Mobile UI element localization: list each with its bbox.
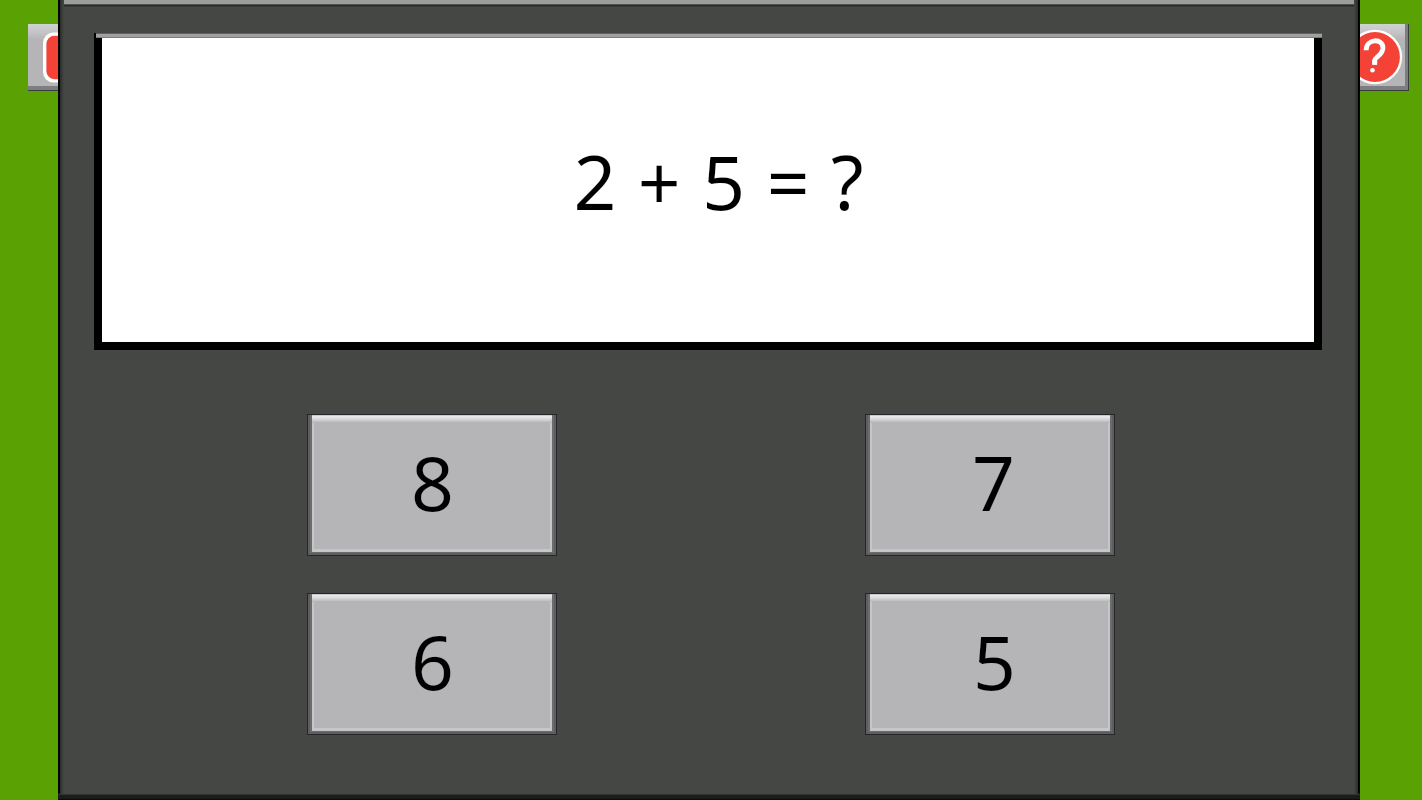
button[interactable]: 5	[865, 593, 1115, 735]
button[interactable]: Quit game	[28, 24, 96, 91]
staticText: 2 + 5 = ?	[573, 130, 865, 232]
staticText: 6	[411, 610, 454, 712]
staticText: 7	[972, 431, 1015, 533]
staticText: 8	[411, 431, 454, 533]
button[interactable]: 6	[307, 593, 557, 735]
staticText: 5	[973, 610, 1016, 712]
button[interactable]: Help	[1341, 24, 1409, 91]
button[interactable]: 8	[307, 414, 557, 556]
button[interactable]: 7	[865, 414, 1115, 556]
